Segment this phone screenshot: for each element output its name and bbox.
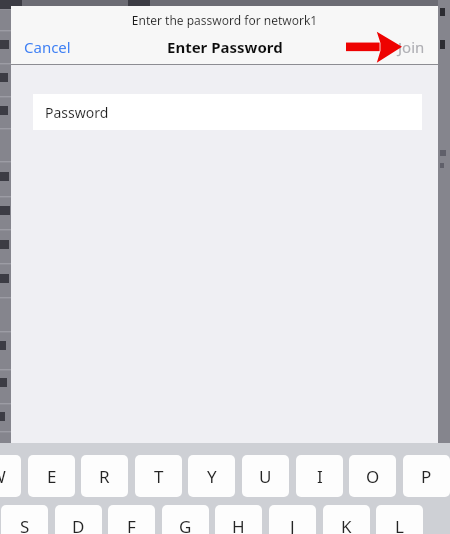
button[interactable]: K: [323, 505, 370, 534]
button[interactable]: E: [28, 455, 75, 497]
staticText: H: [232, 515, 245, 534]
staticText: I: [317, 465, 323, 488]
button[interactable]: Join: [398, 37, 425, 57]
button[interactable]: H: [215, 505, 262, 534]
staticText: E: [47, 465, 57, 488]
staticText: G: [179, 515, 192, 534]
button[interactable]: S: [1, 505, 48, 534]
staticText: L: [395, 515, 404, 534]
staticText: W: [0, 465, 6, 488]
staticText: F: [127, 515, 136, 534]
button[interactable]: G: [162, 505, 209, 534]
button[interactable]: I: [296, 455, 343, 497]
staticText: S: [20, 515, 30, 534]
button[interactable]: R: [81, 455, 128, 497]
button[interactable]: O: [349, 455, 396, 497]
button[interactable]: Cancel: [24, 37, 71, 57]
staticText: U: [259, 465, 272, 488]
staticText: T: [154, 465, 164, 488]
staticText: Enter Password: [167, 37, 283, 57]
staticText: Password: [45, 103, 109, 122]
button[interactable]: Password: [33, 94, 422, 130]
staticText: D: [72, 515, 85, 534]
staticText: P: [421, 465, 432, 488]
button[interactable]: L: [376, 505, 423, 534]
staticText: K: [341, 515, 352, 534]
button[interactable]: W: [0, 455, 21, 497]
other: Arrow pointing at Join: [346, 31, 402, 64]
button[interactable]: J: [269, 505, 316, 534]
button[interactable]: T: [135, 455, 182, 497]
staticText: J: [290, 515, 295, 534]
staticText: Y: [207, 465, 217, 488]
staticText: Enter the password for network1: [11, 12, 438, 28]
button[interactable]: F: [108, 505, 155, 534]
button[interactable]: Y: [188, 455, 235, 497]
staticText: R: [99, 465, 110, 488]
button[interactable]: P: [403, 455, 450, 497]
staticText: O: [366, 465, 380, 488]
button[interactable]: D: [55, 505, 102, 534]
staticText: Join: [398, 37, 425, 57]
button[interactable]: U: [242, 455, 289, 497]
staticText: Cancel: [24, 37, 71, 57]
